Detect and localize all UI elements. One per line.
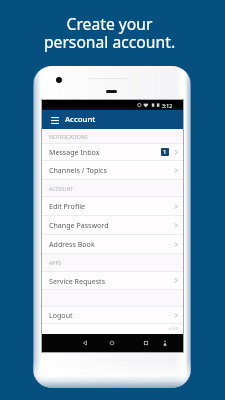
button[interactable]: Service Requests [42, 272, 183, 289]
button[interactable]: Change Password [42, 216, 183, 234]
staticText: Change Password [49, 220, 109, 230]
button[interactable]: Open navigation menu [48, 113, 62, 127]
staticText: 1 [163, 148, 167, 156]
staticText: Account [65, 114, 96, 125]
button[interactable]: Logout [42, 307, 183, 323]
button[interactable]: Address Book [42, 235, 183, 253]
staticText: Edit Profile [49, 201, 86, 211]
staticText: ACCOUNT [49, 185, 74, 192]
staticText: Create your personal account. [0, 13, 222, 53]
staticText: Address Book [49, 239, 95, 249]
button[interactable]: Message Inbox [42, 144, 183, 160]
staticText: NOTIFICATIONS [49, 133, 88, 140]
staticText: Channels / Topics [49, 165, 107, 175]
button[interactable]: Back [79, 337, 91, 349]
staticText: Service Requests [49, 276, 106, 286]
button[interactable]: Recents [140, 337, 152, 349]
staticText: 3:12 [162, 102, 173, 109]
staticText: Message Inbox [49, 147, 100, 157]
button[interactable]: Channels / Topics [42, 161, 183, 179]
staticText: v 2.0 [169, 326, 178, 331]
button[interactable]: Edit Profile [42, 197, 183, 215]
staticText: APPS [49, 259, 62, 266]
button[interactable]: Accessibility [159, 337, 171, 349]
button[interactable]: Home [106, 337, 118, 349]
staticText: Logout [49, 310, 73, 320]
